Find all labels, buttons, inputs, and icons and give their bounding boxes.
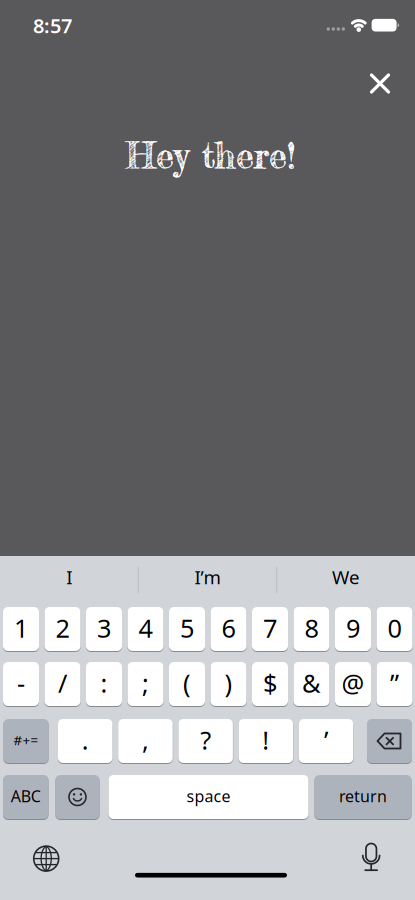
button[interactable]: #+= xyxy=(3,719,48,763)
staticText: & xyxy=(302,666,321,700)
button[interactable]: return xyxy=(314,775,411,819)
staticText: 0 xyxy=(387,611,401,645)
button[interactable]: . xyxy=(58,719,112,763)
staticText: ” xyxy=(390,666,399,700)
button[interactable]: $ xyxy=(252,662,288,706)
staticText: @ xyxy=(341,666,364,700)
button[interactable]: 7 xyxy=(252,607,288,651)
button[interactable]: We xyxy=(281,557,411,597)
staticText: return xyxy=(339,785,387,807)
staticText: 9 xyxy=(346,611,360,645)
button[interactable]: Delete xyxy=(367,719,412,763)
button[interactable]: Emoji xyxy=(55,775,99,819)
staticText: 1 xyxy=(14,611,28,645)
staticText: 3 xyxy=(97,611,111,645)
button[interactable]: Dictate xyxy=(355,842,387,874)
button[interactable]: 9 xyxy=(335,607,371,651)
button[interactable]: 6 xyxy=(210,607,246,651)
staticText: I xyxy=(66,565,72,589)
button[interactable]: 0 xyxy=(376,607,412,651)
staticText: 8:57 xyxy=(33,12,72,39)
staticText: , xyxy=(142,723,149,757)
staticText: Hey there! xyxy=(125,133,295,177)
staticText: ABC xyxy=(11,785,41,807)
button[interactable]: : xyxy=(86,662,122,706)
button[interactable]: I’m xyxy=(142,557,272,597)
staticText: ) xyxy=(224,666,232,700)
staticText: / xyxy=(58,666,67,700)
button[interactable]: ! xyxy=(239,719,293,763)
staticText: 7 xyxy=(263,611,277,645)
button[interactable]: space xyxy=(108,775,308,819)
button[interactable]: , xyxy=(118,719,173,763)
button[interactable]: Close xyxy=(367,71,392,96)
staticText: ! xyxy=(262,723,269,757)
staticText: 4 xyxy=(138,611,152,645)
button[interactable]: 8 xyxy=(293,607,329,651)
staticText: 2 xyxy=(55,611,69,645)
button[interactable]: 4 xyxy=(127,607,163,651)
button[interactable]: @ xyxy=(335,662,371,706)
button[interactable]: Next keyboard xyxy=(31,844,61,874)
button[interactable]: ” xyxy=(376,662,412,706)
staticText: 6 xyxy=(221,611,235,645)
button[interactable]: ? xyxy=(178,719,233,763)
button[interactable]: ; xyxy=(127,662,163,706)
button[interactable]: & xyxy=(293,662,329,706)
staticText: #+= xyxy=(13,731,38,749)
button[interactable]: 5 xyxy=(169,607,205,651)
button[interactable]: 2 xyxy=(44,607,80,651)
button[interactable]: / xyxy=(44,662,80,706)
staticText: ( xyxy=(183,666,191,700)
staticText: $ xyxy=(263,666,277,700)
staticText: - xyxy=(17,666,25,700)
button[interactable]: ABC xyxy=(3,775,48,819)
button[interactable]: ( xyxy=(169,662,205,706)
staticText: 5 xyxy=(180,611,194,645)
staticText: 8 xyxy=(304,611,318,645)
button[interactable]: ’ xyxy=(299,719,353,763)
button[interactable]: 3 xyxy=(86,607,122,651)
staticText: ’ xyxy=(324,723,328,757)
staticText: ? xyxy=(200,723,211,757)
staticText: We xyxy=(332,565,360,589)
staticText: space xyxy=(186,785,230,807)
button[interactable]: 1 xyxy=(3,607,39,651)
button[interactable]: ) xyxy=(210,662,246,706)
button[interactable]: - xyxy=(3,662,39,706)
staticText: . xyxy=(82,723,89,757)
staticText: I’m xyxy=(194,565,220,589)
staticText: Hey there! xyxy=(126,133,296,177)
staticText: : xyxy=(100,666,107,700)
staticText: ; xyxy=(142,666,149,700)
button[interactable]: I xyxy=(4,557,134,597)
